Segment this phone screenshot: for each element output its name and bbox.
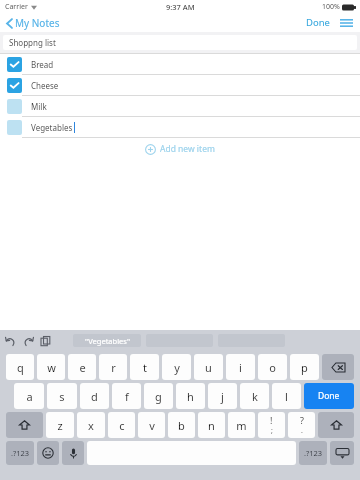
button[interactable]: q <box>6 354 34 380</box>
button[interactable]: Done <box>304 383 354 409</box>
button[interactable]: d <box>80 383 109 409</box>
staticText: . <box>301 426 303 436</box>
staticText: r <box>111 360 116 375</box>
button[interactable]: g <box>144 383 173 409</box>
staticText: a <box>26 389 33 404</box>
staticText: k <box>252 389 258 404</box>
button[interactable]: Redo <box>22 336 35 347</box>
staticText: m <box>236 418 247 433</box>
staticText: ! <box>270 414 273 426</box>
button[interactable]: l <box>272 383 301 409</box>
button[interactable]: Vegetables <box>0 117 360 137</box>
button[interactable]: Backspace <box>322 354 354 380</box>
button[interactable]: o <box>258 354 287 380</box>
button[interactable]: Menu <box>338 16 355 30</box>
staticText: Bread <box>31 59 54 70</box>
button[interactable]: a <box>14 383 44 409</box>
button[interactable]: ? <box>288 412 315 438</box>
staticText: f <box>125 389 129 404</box>
staticText: y <box>174 360 180 375</box>
button[interactable]: c <box>108 412 135 438</box>
button[interactable]: Dictation <box>62 441 84 465</box>
staticText: .?123 <box>11 448 30 458</box>
button[interactable]: Bread <box>0 54 360 74</box>
staticText: u <box>205 360 212 375</box>
button[interactable]: j <box>208 383 237 409</box>
button[interactable]: r <box>99 354 127 380</box>
button[interactable]: Hide keyboard <box>330 441 354 465</box>
button[interactable]: z <box>46 412 74 438</box>
staticText: ? <box>300 414 304 426</box>
staticText: q <box>17 360 24 375</box>
staticText: p <box>301 360 308 375</box>
staticText: o <box>269 360 276 375</box>
button[interactable]: i <box>226 354 255 380</box>
button[interactable]: Shift <box>318 412 354 438</box>
button[interactable]: w <box>37 354 65 380</box>
button[interactable]: ! <box>258 412 285 438</box>
staticText: "Vegetables" <box>85 336 130 346</box>
button[interactable]: My Notes <box>4 14 62 32</box>
staticText: j <box>221 389 224 404</box>
button[interactable]: b <box>168 412 195 438</box>
button[interactable]: Paste <box>40 335 51 347</box>
staticText: t <box>143 360 147 375</box>
staticText: 9:37 AM <box>166 2 195 12</box>
button[interactable]: k <box>240 383 269 409</box>
staticText: s <box>59 389 65 404</box>
staticText: Milk <box>31 101 47 112</box>
button[interactable]: t <box>130 354 159 380</box>
button[interactable]: f <box>112 383 141 409</box>
button[interactable]: p <box>290 354 319 380</box>
staticText: Shoppng list <box>9 37 56 48</box>
staticText: z <box>57 418 63 433</box>
staticText: Done <box>318 390 340 402</box>
staticText: 100% <box>322 2 340 12</box>
staticText: ; <box>271 426 273 436</box>
button[interactable]: .?123 <box>299 441 327 465</box>
button[interactable]: u <box>194 354 223 380</box>
button[interactable]: "Vegetables" <box>73 334 141 347</box>
button[interactable]: Add new item <box>139 140 221 158</box>
button[interactable]: Cheese <box>0 75 360 95</box>
staticText: v <box>149 418 155 433</box>
staticText: Cheese <box>31 80 59 91</box>
staticText: e <box>79 360 86 375</box>
staticText: d <box>91 389 98 404</box>
staticText: c <box>119 418 125 433</box>
staticText: Vegetables <box>31 122 73 133</box>
staticText: n <box>208 418 215 433</box>
button[interactable]: Shoppng list <box>3 35 357 50</box>
button[interactable]: m <box>228 412 255 438</box>
button[interactable]: Milk <box>0 96 360 116</box>
staticText: x <box>88 418 94 433</box>
button[interactable]: Emoji <box>37 441 59 465</box>
button[interactable]: x <box>77 412 105 438</box>
button[interactable]: h <box>176 383 205 409</box>
staticText: .?123 <box>304 448 323 458</box>
button[interactable]: v <box>138 412 165 438</box>
staticText: My Notes <box>15 16 60 30</box>
staticText: h <box>187 389 194 404</box>
button[interactable]: .?123 <box>6 441 34 465</box>
staticText: Add new item <box>160 143 215 155</box>
staticText: Done <box>306 16 330 29</box>
button[interactable]: y <box>162 354 191 380</box>
button[interactable]: e <box>68 354 96 380</box>
staticText: b <box>178 418 185 433</box>
button[interactable]: Shift <box>6 412 43 438</box>
button[interactable]: Done <box>303 14 333 31</box>
staticText: l <box>285 389 288 404</box>
button[interactable]: Undo <box>4 336 17 347</box>
staticText: w <box>47 360 56 375</box>
button[interactable]: n <box>198 412 225 438</box>
staticText: g <box>155 389 162 404</box>
staticText: i <box>239 360 242 375</box>
staticText: Carrier <box>5 2 28 12</box>
button[interactable]: s <box>47 383 77 409</box>
